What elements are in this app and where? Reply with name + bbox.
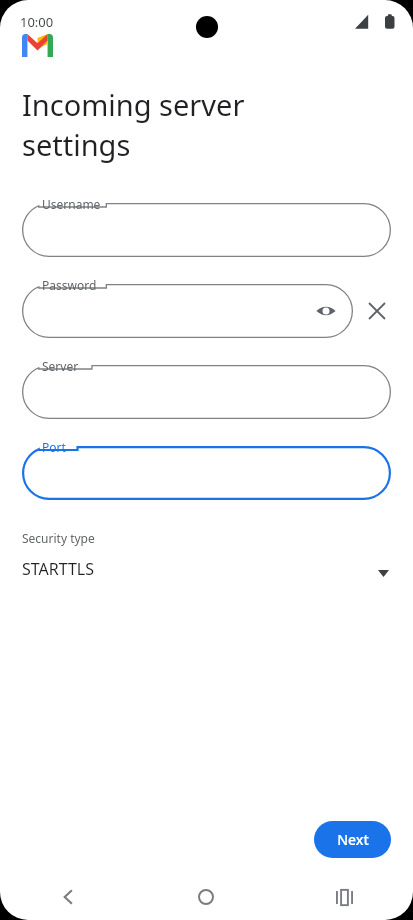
button[interactable]: Back <box>0 874 137 920</box>
button[interactable]: Port <box>22 446 391 500</box>
button[interactable]: Next <box>314 821 391 858</box>
staticText: Next <box>337 830 369 849</box>
button[interactable]: Show password <box>313 298 339 324</box>
staticText: Security type <box>22 530 95 546</box>
staticText: Password <box>42 277 97 293</box>
button[interactable]: Home <box>137 874 275 920</box>
button[interactable]: Password <box>22 284 353 338</box>
staticText: Port <box>42 439 66 455</box>
button[interactable]: Username <box>22 203 391 257</box>
staticText: STARTTLS <box>22 558 95 580</box>
button[interactable]: Recent apps <box>275 874 413 920</box>
staticText: 10:00 <box>20 13 54 31</box>
staticText: Username <box>42 196 101 212</box>
button[interactable]: Security type <box>22 530 391 580</box>
button[interactable]: Server <box>22 365 391 419</box>
staticText: Incoming server settings <box>22 85 245 165</box>
staticText: Server <box>42 358 79 374</box>
button[interactable]: Clear password <box>363 297 391 325</box>
